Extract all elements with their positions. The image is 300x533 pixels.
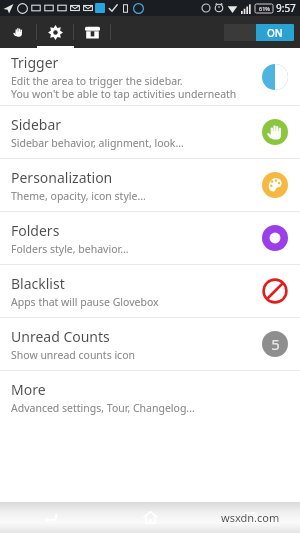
staticText: Sidebar bbox=[11, 115, 62, 134]
staticText: Folders style, behavior... bbox=[11, 242, 129, 256]
button[interactable]: Folders bbox=[0, 212, 300, 264]
staticText: 9:57 bbox=[276, 1, 296, 15]
staticText: Trigger bbox=[11, 53, 59, 72]
staticText: Folders bbox=[11, 221, 60, 240]
staticText: Sidebar behavior, alignment, look... bbox=[11, 136, 184, 150]
button[interactable]: ON bbox=[224, 24, 294, 41]
button[interactable]: Back bbox=[0, 502, 100, 533]
staticText: More bbox=[11, 380, 46, 399]
button[interactable]: Personalization bbox=[0, 159, 300, 211]
button[interactable]: Blacklist bbox=[0, 265, 300, 317]
button[interactable]: Store tab bbox=[74, 16, 111, 48]
button[interactable]: Unread Counts bbox=[0, 318, 300, 370]
button[interactable]: Sidebar bbox=[0, 106, 300, 158]
staticText: Theme, opacity, icon style... bbox=[11, 189, 146, 203]
button[interactable]: Home bbox=[100, 502, 200, 533]
staticText: ON bbox=[267, 26, 283, 40]
staticText: Advanced settings, Tour, Changelog... bbox=[11, 401, 195, 415]
staticText: Personalization bbox=[11, 168, 113, 187]
staticText: Unread Counts bbox=[11, 327, 110, 346]
button[interactable]: Recent apps bbox=[200, 502, 300, 533]
button[interactable]: Settings tab bbox=[37, 16, 74, 48]
staticText: Edit the area to trigger the sidebar. Yo… bbox=[11, 74, 237, 101]
staticText: 61% bbox=[259, 5, 270, 12]
staticText: Apps that will pause Glovebox bbox=[11, 295, 159, 309]
button[interactable]: More bbox=[0, 371, 300, 423]
staticText: 5 bbox=[271, 334, 280, 354]
button[interactable]: Trigger tab bbox=[0, 16, 37, 48]
button[interactable]: Trigger bbox=[0, 48, 300, 105]
staticText: Show unread counts icon bbox=[11, 348, 135, 362]
staticText: wsxdn.com bbox=[221, 510, 280, 525]
staticText: Blacklist bbox=[11, 274, 65, 293]
